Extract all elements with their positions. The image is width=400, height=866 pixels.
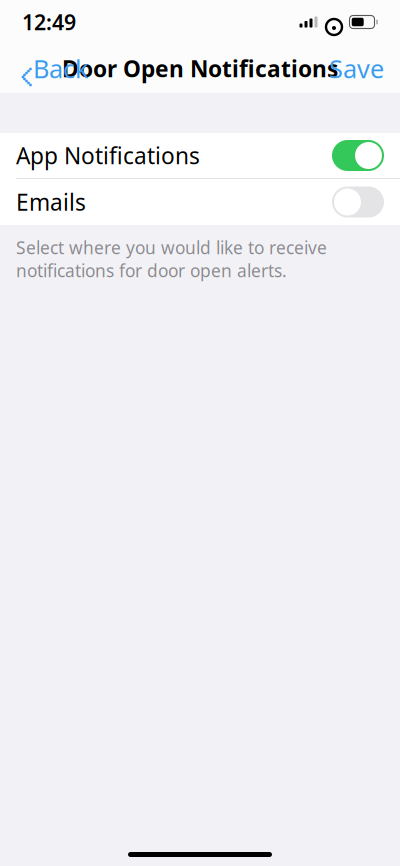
staticText: Save [329,52,384,85]
staticText: Select where you would like to receive n… [16,236,327,282]
staticText: Back [33,52,89,85]
button[interactable]: Back [8,44,97,93]
button[interactable]: App Notifications [0,133,400,178]
staticText: Emails [16,187,86,217]
staticText: 12:49 [22,8,76,36]
button[interactable]: Save [321,44,392,93]
button[interactable]: Emails [0,179,400,225]
staticText: Door Open Notifications [62,53,338,83]
staticText: App Notifications [16,140,200,170]
